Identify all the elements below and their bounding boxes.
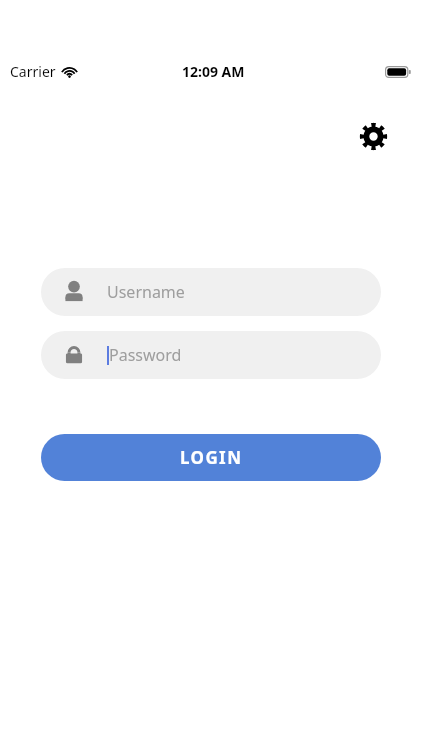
button[interactable]: Password <box>41 331 381 379</box>
staticText: LOGIN <box>180 446 243 469</box>
button[interactable]: LOGIN <box>41 434 381 481</box>
button[interactable]: Settings <box>353 116 393 156</box>
staticText: Username <box>107 281 185 303</box>
staticText: 12:09 AM <box>182 62 245 81</box>
staticText: Password <box>109 344 182 366</box>
staticText: Carrier <box>10 62 56 81</box>
button[interactable]: Username <box>41 268 381 316</box>
